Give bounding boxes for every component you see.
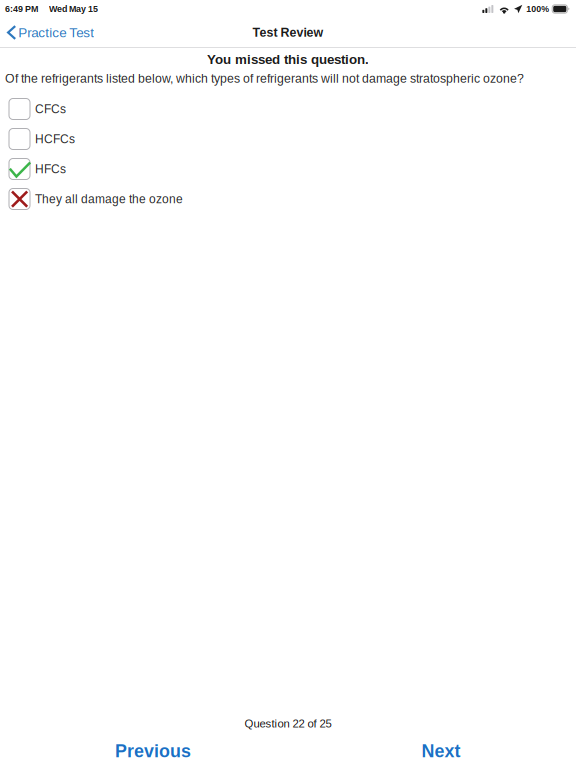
staticText: HFCs [35, 162, 66, 176]
staticText: 100% [526, 4, 549, 14]
staticText: Wed May 15 [49, 4, 98, 14]
staticText: Test Review [252, 26, 323, 39]
staticText: 6:49 PM [5, 4, 38, 14]
button[interactable]: CFCs [9, 94, 576, 124]
staticText: HCFCs [35, 132, 75, 146]
button[interactable]: Practice Test [0, 18, 102, 47]
staticText: They all damage the ozone [35, 192, 183, 206]
button[interactable]: HCFCs [9, 124, 576, 154]
staticText: Of the refrigerants listed below, which … [5, 72, 524, 85]
staticText: CFCs [35, 102, 66, 116]
staticText: You missed this question. [207, 52, 369, 67]
button[interactable]: They all damage the ozone [9, 184, 576, 214]
staticText: Question 22 of 25 [244, 717, 331, 730]
button[interactable]: HFCs [9, 154, 576, 184]
button[interactable]: Next [413, 733, 468, 768]
button[interactable]: Previous [107, 733, 199, 768]
staticText: Practice Test [18, 25, 94, 40]
staticText: Next [421, 741, 460, 761]
staticText: Previous [115, 741, 191, 761]
